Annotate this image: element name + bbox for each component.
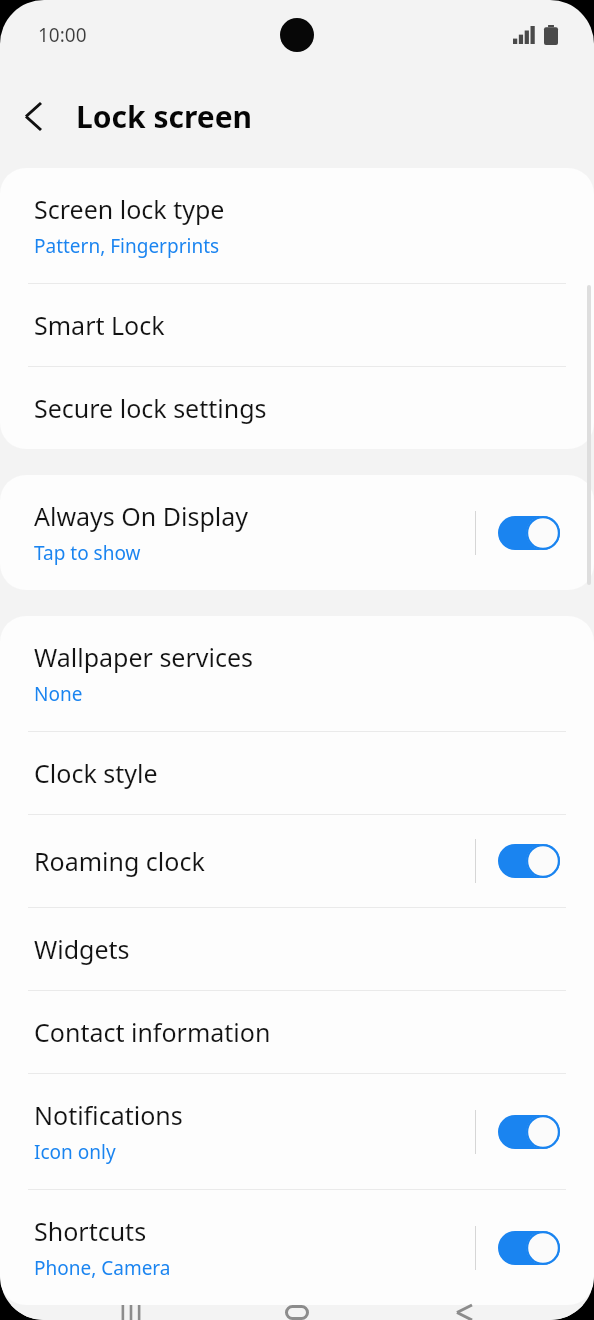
staticText: Wallpaper services: [34, 640, 254, 674]
button[interactable]: Wallpaper services: [0, 616, 594, 731]
staticText: Always On Display: [34, 499, 249, 533]
staticText: Pattern, Fingerprints: [34, 233, 220, 259]
staticText: Tap to show: [34, 540, 141, 566]
button[interactable]: Always On Display: [0, 475, 594, 590]
button[interactable]: Contact information: [0, 991, 594, 1073]
button[interactable]: Shortcuts: [0, 1190, 594, 1305]
staticText: Clock style: [34, 756, 158, 790]
staticText: Widgets: [34, 932, 130, 966]
staticText: Secure lock settings: [34, 391, 267, 425]
button[interactable]: Toggle on: [498, 1231, 560, 1265]
staticText: Screen lock type: [34, 192, 225, 226]
button[interactable]: Toggle on: [498, 1115, 560, 1149]
staticText: Phone, Camera: [34, 1255, 171, 1281]
button[interactable]: Recent apps: [95, 1305, 167, 1320]
button[interactable]: Roaming clock: [0, 815, 594, 907]
button[interactable]: Secure lock settings: [0, 367, 594, 449]
button[interactable]: Toggle on: [498, 844, 560, 878]
button[interactable]: Notifications: [0, 1074, 594, 1189]
staticText: Contact information: [34, 1015, 271, 1049]
button[interactable]: Back: [428, 1305, 500, 1320]
button[interactable]: Screen lock type: [0, 168, 594, 283]
button[interactable]: Home: [261, 1305, 333, 1320]
staticText: Lock screen: [76, 96, 253, 137]
staticText: Smart Lock: [34, 308, 165, 342]
button[interactable]: Clock style: [0, 732, 594, 814]
staticText: Icon only: [34, 1139, 116, 1165]
staticText: Notifications: [34, 1098, 183, 1132]
button[interactable]: Smart Lock: [0, 284, 594, 366]
button[interactable]: Toggle on: [498, 516, 560, 550]
staticText: Roaming clock: [34, 844, 205, 878]
button[interactable]: Back: [0, 83, 66, 149]
staticText: Shortcuts: [34, 1214, 147, 1248]
button[interactable]: Widgets: [0, 908, 594, 990]
staticText: 10:00: [38, 22, 87, 48]
staticText: None: [34, 681, 83, 707]
